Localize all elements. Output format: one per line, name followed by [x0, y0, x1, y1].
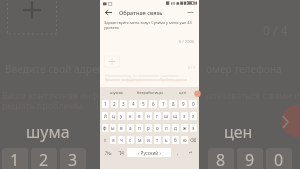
- button[interactable]: к: [127, 112, 134, 120]
- button[interactable]: 2: [31, 148, 57, 169]
- button[interactable]: л: [163, 124, 170, 132]
- button[interactable]: 9: [237, 148, 263, 169]
- button[interactable]: 4: [129, 100, 137, 108]
- staticText: ц: [112, 113, 115, 119]
- staticText: х: [192, 113, 195, 119]
- staticText: 1: [104, 101, 107, 107]
- button[interactable]: ↵: [184, 148, 197, 157]
- button[interactable]: ю: [181, 136, 188, 144]
- staticText: 9: [245, 149, 255, 169]
- button[interactable]: 8: [169, 100, 177, 108]
- button[interactable]: 5: [139, 100, 147, 108]
- button[interactable]: 1: [102, 100, 109, 108]
- staticText: э: [192, 125, 195, 131]
- button[interactable]: ж: [181, 124, 188, 132]
- button[interactable]: е: [136, 112, 143, 120]
- staticText: с: [129, 137, 132, 143]
- staticText: ж: [183, 125, 187, 131]
- button[interactable]: д: [172, 124, 179, 132]
- button[interactable]: я: [110, 136, 116, 144]
- staticText: й: [104, 113, 107, 119]
- staticText: Введите свой адрес э: [5, 62, 111, 76]
- button[interactable]: ?№: [102, 148, 114, 157]
- button[interactable]: безработицы: [133, 87, 166, 98]
- button[interactable]: 1: [2, 148, 28, 169]
- staticText: Нажимая кнопку, вы соглашаетесь с услови…: [105, 74, 180, 78]
- button[interactable]: в: [118, 124, 125, 132]
- button[interactable]: ь: [163, 136, 170, 144]
- staticText: ю: [183, 137, 187, 143]
- button[interactable]: ⌫: [190, 136, 197, 144]
- button[interactable]: 9: [179, 100, 187, 108]
- button[interactable]: 8: [208, 148, 234, 169]
- staticText: р: [147, 125, 150, 131]
- staticText: 0: [274, 149, 284, 169]
- staticText: цен: [179, 90, 187, 95]
- button[interactable]: й: [102, 112, 108, 120]
- staticText: г: [156, 113, 159, 119]
- staticText: омер телефона: [206, 62, 282, 76]
- button[interactable]: п: [136, 124, 143, 132]
- button[interactable]: 0: [189, 100, 197, 108]
- button[interactable]: 3: [60, 148, 86, 169]
- staticText: 3: [122, 101, 125, 107]
- staticText: Обратная связь: [119, 9, 163, 17]
- button[interactable]: Ещё: [186, 8, 195, 17]
- staticText: ‹ Русский ›: [138, 150, 161, 156]
- staticText: б: [174, 137, 177, 143]
- button[interactable]: Назад: [103, 7, 114, 18]
- button[interactable]: х: [190, 112, 197, 120]
- button[interactable]: ш: [163, 112, 170, 120]
- button[interactable]: у: [118, 112, 125, 120]
- staticText: ш: [164, 113, 169, 119]
- button[interactable]: 0: [266, 148, 292, 169]
- button[interactable]: шумах: [100, 87, 133, 98]
- button[interactable]: цен: [166, 87, 199, 98]
- button[interactable]: р: [145, 124, 152, 132]
- staticText: 0 / 3: [188, 65, 195, 70]
- button[interactable]: о: [154, 124, 161, 132]
- button[interactable]: с: [127, 136, 134, 144]
- button[interactable]: т: [154, 136, 161, 144]
- button[interactable]: 2: [111, 100, 118, 108]
- button[interactable]: Ἲ4: [116, 148, 125, 157]
- staticText: 2: [113, 101, 116, 107]
- staticText: ы: [111, 125, 115, 131]
- button[interactable]: ч: [118, 136, 125, 144]
- staticText: о: [156, 125, 159, 131]
- staticText: 6: [152, 101, 155, 107]
- button[interactable]: н: [145, 112, 152, 120]
- button[interactable]: э: [190, 124, 197, 132]
- button[interactable]: з: [181, 112, 188, 120]
- staticText: Политики конфиденциальности и обработки …: [105, 78, 188, 82]
- button[interactable]: ,: [173, 148, 182, 157]
- staticText: ⌫: [190, 138, 197, 143]
- staticText: ↵: [189, 150, 193, 155]
- button[interactable]: 6: [149, 100, 157, 108]
- button[interactable]: а: [127, 124, 134, 132]
- staticText: уровень: [104, 25, 120, 30]
- button[interactable]: ф: [102, 124, 108, 132]
- button[interactable]: г: [154, 112, 161, 120]
- button[interactable]: ц: [110, 112, 116, 120]
- button[interactable]: б: [172, 136, 179, 144]
- staticText: щ: [173, 113, 178, 119]
- button[interactable]: 7: [159, 100, 167, 108]
- staticText: шума: [26, 121, 70, 143]
- staticText: 8: [172, 101, 175, 107]
- button[interactable]: 3: [120, 100, 127, 108]
- staticText: цен: [224, 121, 253, 143]
- button[interactable]: ы: [110, 124, 116, 132]
- button[interactable]: ⇧: [102, 136, 108, 144]
- staticText: ,: [177, 150, 179, 156]
- button[interactable]: ‹ Русский ›: [127, 148, 171, 157]
- button[interactable]: и: [145, 136, 152, 144]
- staticText: 3: [68, 149, 78, 169]
- button[interactable]: щ: [172, 112, 179, 120]
- button[interactable]: м: [136, 136, 143, 144]
- staticText: безработицы: [137, 90, 163, 95]
- staticText: 1: [10, 149, 20, 169]
- staticText: у: [120, 113, 123, 119]
